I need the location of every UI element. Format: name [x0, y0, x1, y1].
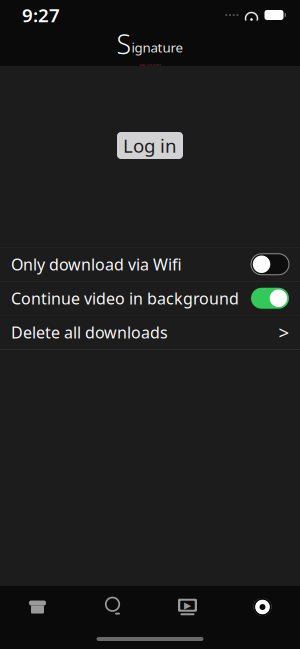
staticText: 9:27	[22, 3, 60, 27]
staticText: ▶	[184, 600, 191, 611]
staticText: ignature	[131, 38, 183, 56]
staticText: S	[116, 26, 131, 61]
staticText: Continue video in background	[11, 288, 239, 309]
staticText: Log in	[123, 133, 177, 158]
staticText: >	[278, 320, 289, 345]
button[interactable]: Only download via Wifi	[0, 247, 300, 281]
button[interactable]: Home	[0, 586, 75, 628]
staticText: THE STUDIO	[139, 63, 161, 68]
staticText: Delete all downloads	[11, 322, 168, 343]
button[interactable]: Videos	[150, 586, 225, 628]
button[interactable]: Settings	[225, 586, 300, 628]
button[interactable]: Search	[75, 586, 150, 628]
button[interactable]: Continue video in background	[0, 281, 300, 315]
button[interactable]: Delete all downloads	[0, 315, 300, 349]
button[interactable]: Log in	[117, 132, 183, 159]
staticText: Only download via Wifi	[11, 254, 182, 275]
